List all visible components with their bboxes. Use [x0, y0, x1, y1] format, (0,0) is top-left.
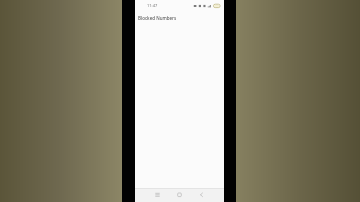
button[interactable]: [135, 189, 164, 202]
button[interactable]: [164, 189, 194, 202]
button[interactable]: Blocked Numbers: [135, 11, 224, 25]
button[interactable]: [194, 189, 224, 202]
staticText: Blocked Numbers: [138, 15, 177, 21]
staticText: 11:47: [147, 3, 158, 8]
